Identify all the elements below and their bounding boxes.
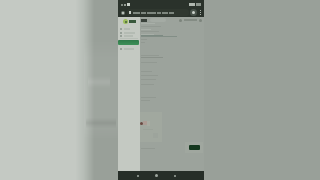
button[interactable]: Notifications (179, 19, 182, 22)
button[interactable]: Recent apps (170, 171, 179, 180)
button[interactable]: More options (198, 9, 203, 16)
button[interactable] (118, 27, 140, 30)
button[interactable]: Account (199, 19, 202, 22)
button[interactable] (118, 34, 140, 37)
button[interactable]: Home (152, 171, 161, 180)
button[interactable] (189, 145, 200, 150)
button[interactable]: Back (133, 171, 142, 180)
button[interactable] (123, 19, 136, 24)
button[interactable] (127, 9, 189, 16)
button[interactable] (118, 40, 139, 45)
button[interactable]: Home (119, 9, 126, 16)
button[interactable] (118, 47, 140, 50)
button[interactable] (118, 31, 140, 34)
button[interactable]: Search with camera (190, 9, 197, 16)
